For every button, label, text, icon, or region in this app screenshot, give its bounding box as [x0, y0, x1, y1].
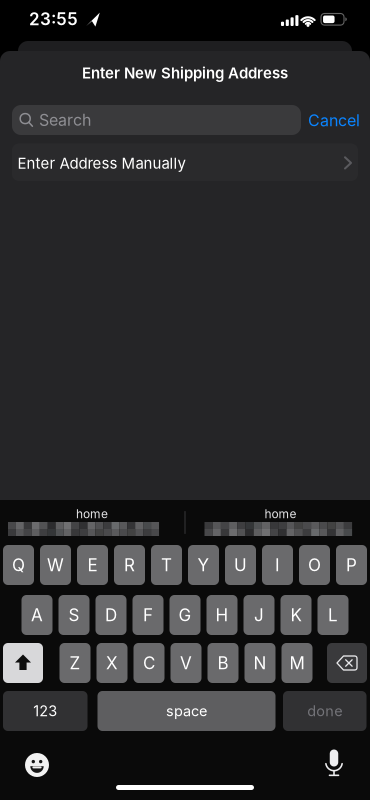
button[interactable]: C — [133, 643, 164, 683]
button[interactable]: K — [280, 595, 311, 635]
staticText: F — [143, 605, 153, 625]
button[interactable]: Enter Address Manually — [12, 143, 358, 181]
staticText: Enter New Shipping Address — [82, 64, 288, 82]
staticText: done — [307, 702, 342, 720]
button[interactable]: T — [151, 545, 182, 585]
button[interactable]: home — [187, 495, 370, 541]
button[interactable]: R — [114, 545, 145, 585]
staticText: W — [47, 555, 64, 575]
button[interactable]: space — [97, 691, 275, 731]
staticText: Enter Address Manually — [17, 154, 185, 172]
button[interactable]: home — [0, 495, 184, 541]
staticText: Q — [12, 555, 25, 575]
button[interactable]: V — [170, 643, 201, 683]
button[interactable]: W — [40, 545, 71, 585]
button[interactable]: G — [169, 595, 200, 635]
staticText: Search — [39, 110, 91, 130]
staticText: L — [328, 605, 338, 625]
button[interactable] — [3, 643, 43, 683]
staticText: S — [68, 605, 79, 625]
staticText: X — [106, 653, 118, 673]
staticText: Cancel — [308, 111, 360, 130]
button[interactable]: M — [281, 643, 312, 683]
staticText: R — [124, 555, 135, 575]
staticText: C — [143, 653, 155, 673]
button[interactable]: Q — [3, 545, 34, 585]
button[interactable]: D — [95, 595, 126, 635]
staticText: Z — [69, 653, 80, 673]
button[interactable]: H — [206, 595, 237, 635]
staticText: 23:55 — [29, 9, 78, 29]
button[interactable]: Cancel — [299, 103, 369, 137]
staticText: 123 — [33, 702, 57, 720]
button[interactable]: A — [21, 595, 52, 635]
staticText: G — [178, 605, 191, 625]
button[interactable] — [322, 749, 346, 776]
staticText: K — [290, 605, 301, 625]
button[interactable]: P — [336, 545, 367, 585]
staticText: T — [161, 555, 172, 575]
staticText: home — [76, 507, 108, 521]
button[interactable]: done — [283, 691, 366, 731]
staticText: I — [275, 555, 280, 575]
staticText: Y — [197, 555, 209, 575]
staticText: V — [180, 653, 192, 673]
button[interactable]: L — [317, 595, 348, 635]
staticText: U — [234, 555, 247, 575]
button[interactable] — [327, 643, 367, 683]
button[interactable]: J — [243, 595, 274, 635]
staticText: P — [346, 555, 357, 575]
button[interactable]: E — [77, 545, 108, 585]
staticText: J — [254, 605, 264, 625]
staticText: N — [253, 653, 266, 673]
staticText: M — [289, 653, 304, 673]
staticText: O — [308, 555, 321, 575]
button[interactable] — [25, 753, 49, 777]
button[interactable] — [12, 105, 301, 135]
button[interactable]: 123 — [3, 691, 87, 731]
button[interactable]: I — [262, 545, 293, 585]
staticText: A — [31, 605, 43, 625]
button[interactable]: Y — [188, 545, 219, 585]
staticText: space — [166, 702, 207, 720]
button[interactable]: O — [299, 545, 330, 585]
button[interactable]: Z — [59, 643, 90, 683]
staticText: E — [87, 555, 97, 575]
staticText: B — [217, 653, 228, 673]
button[interactable]: N — [244, 643, 275, 683]
button[interactable]: U — [225, 545, 256, 585]
staticText: home — [264, 507, 296, 521]
button[interactable]: X — [96, 643, 127, 683]
button[interactable]: B — [207, 643, 238, 683]
button[interactable]: F — [132, 595, 163, 635]
button[interactable]: S — [58, 595, 89, 635]
staticText: D — [105, 605, 117, 625]
staticText: H — [215, 605, 228, 625]
